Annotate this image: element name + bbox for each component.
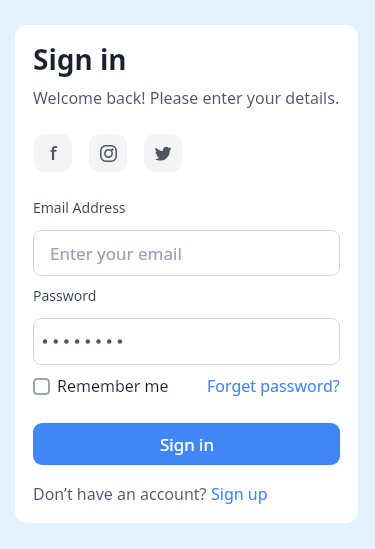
staticText: Email Address: [33, 198, 126, 217]
staticText: Password: [33, 286, 97, 305]
button[interactable]: [89, 134, 127, 172]
staticText: f: [50, 141, 57, 166]
staticText: Welcome back! Please enter your details.: [33, 87, 340, 109]
staticText: Sign in: [33, 40, 127, 78]
button[interactable]: Remember me: [33, 375, 169, 397]
staticText: Enter your email: [50, 242, 182, 265]
button[interactable]: [33, 318, 340, 365]
button[interactable]: Forget password?: [207, 375, 340, 397]
staticText: Sign up: [211, 483, 268, 505]
button[interactable]: Don’t have an account?: [33, 483, 268, 505]
button[interactable]: Enter your email: [33, 230, 340, 276]
staticText: Remember me: [57, 375, 169, 397]
staticText: Don’t have an account?: [33, 483, 211, 505]
button[interactable]: Sign in: [33, 423, 340, 465]
button[interactable]: f: [34, 134, 72, 172]
button[interactable]: [144, 134, 182, 172]
staticText: Sign in: [160, 433, 214, 456]
